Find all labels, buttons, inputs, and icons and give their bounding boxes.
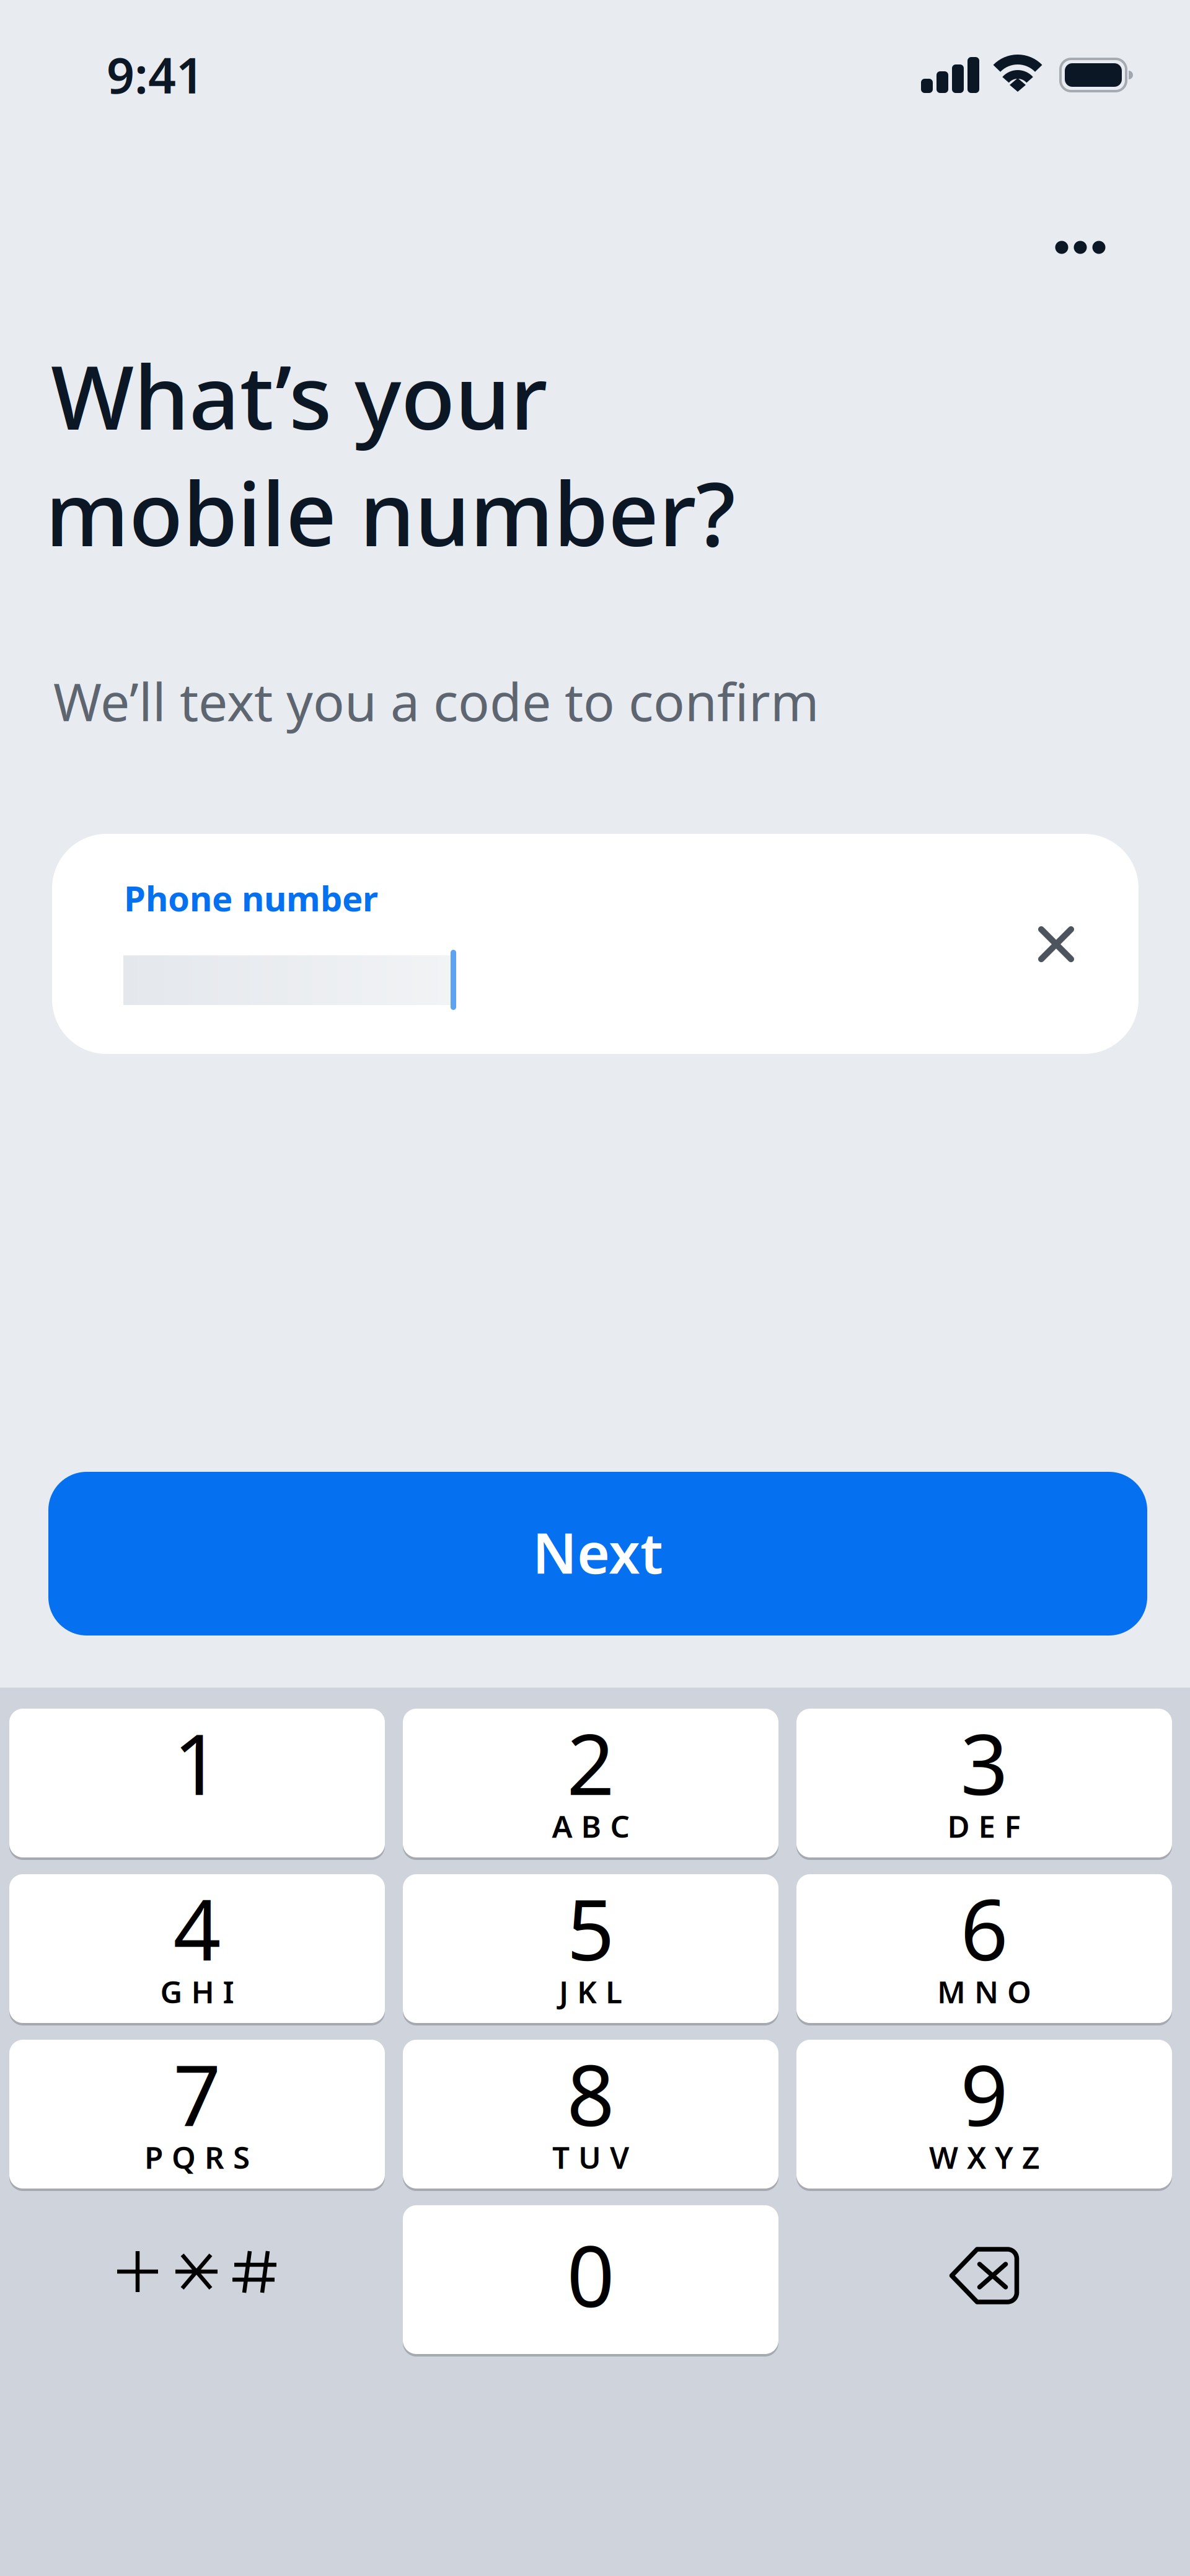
button[interactable]: Delete	[796, 2205, 1172, 2354]
staticText: JKL	[559, 1971, 622, 2012]
staticText: DEF	[947, 1805, 1021, 1846]
staticText: ABC	[552, 1805, 629, 1846]
staticText: 2	[567, 1707, 615, 1818]
button[interactable]: Clear phone number	[1000, 888, 1112, 1000]
staticText: TUV	[552, 2137, 629, 2177]
button[interactable]: Plus, star and hash	[9, 2205, 385, 2354]
staticText: MNO	[937, 1971, 1031, 2012]
staticText: PQRS	[144, 2137, 250, 2177]
button[interactable]: 7	[9, 2040, 385, 2189]
staticText: 1	[173, 1707, 221, 1818]
button[interactable]: Next	[48, 1472, 1147, 1635]
staticText: We’ll text you a code to confirm	[53, 666, 819, 736]
staticText: 6	[960, 1873, 1008, 1984]
button[interactable]: 8	[403, 2040, 778, 2189]
staticText: 8	[567, 2038, 615, 2149]
staticText: WXYZ	[929, 2137, 1039, 2177]
staticText: What’s your	[51, 337, 547, 454]
staticText: Phone number	[124, 875, 378, 921]
staticText: 9:41	[107, 42, 204, 107]
staticText: 3	[960, 1707, 1008, 1818]
button[interactable]: 6	[796, 1874, 1172, 2023]
staticText: 9	[960, 2038, 1008, 2149]
button[interactable]: More options	[1028, 201, 1133, 294]
button[interactable]: 3	[796, 1709, 1172, 1857]
button[interactable]: 4	[9, 1874, 385, 2023]
staticText: 0	[567, 2219, 615, 2330]
button[interactable]: 9	[796, 2040, 1172, 2189]
staticText: mobile number?	[45, 453, 736, 571]
button[interactable]: 5	[403, 1874, 778, 2023]
staticText: 5	[567, 1873, 615, 1984]
button[interactable]: 0	[403, 2205, 778, 2354]
button[interactable]: 1	[9, 1709, 385, 1857]
staticText: GHI	[160, 1971, 234, 2012]
staticText: 4	[173, 1873, 221, 1984]
button[interactable]: 2	[403, 1709, 778, 1857]
staticText: 7	[173, 2038, 221, 2149]
staticText: Next	[532, 1514, 663, 1589]
